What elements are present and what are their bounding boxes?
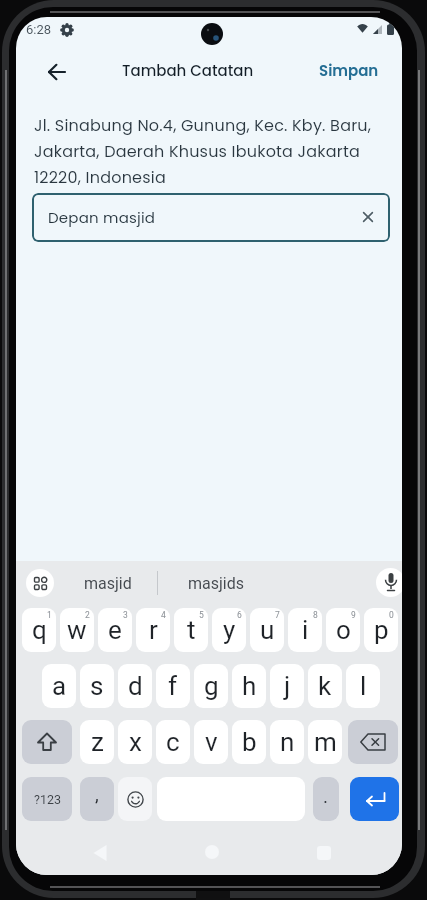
staticText: 6:28: [26, 22, 52, 37]
button[interactable]: [88, 841, 112, 865]
button[interactable]: ?123: [22, 777, 72, 821]
button[interactable]: u: [250, 608, 284, 652]
button[interactable]: b: [232, 720, 266, 764]
button[interactable]: j: [270, 664, 304, 708]
staticText: n: [280, 727, 295, 757]
button[interactable]: i: [288, 608, 322, 652]
button[interactable]: w: [60, 608, 94, 652]
staticText: 7: [275, 610, 280, 620]
button[interactable]: p: [364, 608, 398, 652]
staticText: o: [336, 615, 351, 645]
staticText: u: [260, 615, 275, 645]
button[interactable]: q: [22, 608, 56, 652]
staticText: b: [242, 727, 257, 757]
staticText: Simpan: [319, 60, 379, 81]
button[interactable]: .: [313, 777, 339, 821]
staticText: z: [91, 727, 104, 757]
staticText: q: [32, 615, 47, 645]
button[interactable]: [348, 720, 398, 764]
staticText: r: [149, 615, 158, 645]
staticText: i: [302, 615, 309, 645]
staticText: c: [166, 727, 180, 757]
button[interactable]: [26, 569, 54, 597]
staticText: l: [360, 671, 367, 701]
staticText: masjids: [188, 574, 244, 593]
staticText: t: [187, 615, 196, 645]
button[interactable]: k: [308, 664, 342, 708]
button[interactable]: g: [194, 664, 228, 708]
staticText: j: [284, 671, 291, 701]
staticText: p: [374, 615, 389, 645]
staticText: 8: [313, 610, 318, 620]
button[interactable]: [312, 841, 336, 865]
staticText: 1: [47, 610, 52, 620]
staticText: f: [168, 671, 178, 701]
staticText: masjid: [84, 574, 132, 593]
button[interactable]: masjid: [68, 569, 148, 597]
button[interactable]: a: [42, 664, 76, 708]
button[interactable]: c: [156, 720, 190, 764]
button[interactable]: x: [118, 720, 152, 764]
staticText: Jl. Sinabung No.4, Gunung, Kec. Kby. Bar…: [34, 114, 372, 189]
staticText: 4: [161, 610, 166, 620]
staticText: .: [323, 785, 329, 807]
button[interactable]: v: [194, 720, 228, 764]
staticText: s: [90, 671, 104, 701]
staticText: y: [223, 615, 236, 645]
button[interactable]: o: [326, 608, 360, 652]
button[interactable]: r: [136, 608, 170, 652]
button[interactable]: ,: [80, 777, 114, 821]
staticText: 9: [351, 610, 356, 620]
button[interactable]: [376, 568, 402, 597]
button[interactable]: e: [98, 608, 132, 652]
button[interactable]: z: [80, 720, 114, 764]
button[interactable]: m: [308, 720, 342, 764]
staticText: Depan masjid: [48, 207, 156, 228]
button[interactable]: t: [174, 608, 208, 652]
staticText: v: [205, 727, 218, 757]
staticText: x: [129, 727, 142, 757]
button[interactable]: l: [346, 664, 380, 708]
staticText: Tambah Catatan: [122, 60, 254, 81]
button[interactable]: [350, 777, 399, 821]
staticText: w: [67, 615, 87, 645]
button[interactable]: y: [212, 608, 246, 652]
staticText: ,: [95, 783, 99, 805]
button[interactable]: [22, 720, 72, 764]
button[interactable]: [356, 205, 380, 229]
staticText: 2: [85, 610, 90, 620]
button[interactable]: masjids: [176, 569, 256, 597]
staticText: e: [108, 615, 122, 645]
button[interactable]: h: [232, 664, 266, 708]
button[interactable]: Simpan: [312, 55, 385, 85]
button[interactable]: Depan masjid: [32, 193, 390, 242]
button[interactable]: [200, 840, 224, 864]
staticText: a: [52, 671, 67, 701]
staticText: ?123: [34, 792, 61, 807]
button[interactable]: [118, 777, 152, 821]
staticText: 3: [123, 610, 128, 620]
staticText: 0: [389, 610, 394, 620]
staticText: 5: [199, 610, 204, 620]
button[interactable]: d: [118, 664, 152, 708]
staticText: h: [242, 671, 257, 701]
staticText: 6: [237, 610, 242, 620]
staticText: g: [204, 671, 219, 701]
staticText: d: [128, 671, 143, 701]
staticText: k: [318, 671, 332, 701]
button[interactable]: f: [156, 664, 190, 708]
button[interactable]: n: [270, 720, 304, 764]
staticText: m: [314, 727, 337, 757]
button[interactable]: [40, 56, 74, 88]
button[interactable]: s: [80, 664, 114, 708]
